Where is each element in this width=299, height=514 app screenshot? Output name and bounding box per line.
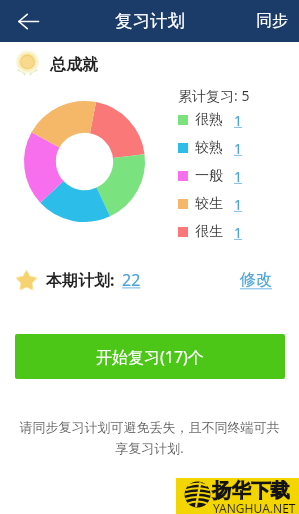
button[interactable]: 同步: [245, 1, 299, 41]
staticText: 1: [234, 139, 243, 158]
staticText: 累计复习: 5: [178, 86, 250, 105]
staticText: 1: [234, 167, 243, 186]
staticText: 很熟: [195, 111, 223, 129]
button[interactable]: 22: [122, 269, 141, 291]
staticText: 很生: [195, 223, 223, 241]
button[interactable]: 很熟: [178, 109, 243, 131]
button[interactable]: 较熟: [178, 137, 243, 159]
button[interactable]: 开始复习(17)个: [15, 334, 285, 379]
staticText: 请同步复习计划可避免丢失，且不同终端可共享复习计划.: [19, 419, 280, 457]
staticText: 较生: [195, 195, 223, 213]
staticText: 一般: [195, 167, 223, 185]
staticText: 扬华下载: [212, 478, 290, 503]
staticText: 1: [234, 111, 243, 130]
staticText: 同步: [256, 11, 288, 31]
button[interactable]: 较生: [178, 193, 243, 215]
button[interactable]: 一般: [178, 165, 243, 187]
button[interactable]: 很生: [178, 221, 243, 243]
button[interactable]: 修改: [240, 270, 272, 290]
staticText: 本期计划:: [46, 269, 115, 291]
staticText: 开始复习(17)个: [96, 346, 204, 368]
staticText: 较熟: [195, 139, 223, 157]
staticText: 1: [234, 223, 243, 242]
staticText: 复习计划: [115, 10, 185, 32]
staticText: 总成就: [50, 55, 98, 75]
staticText: YANGHUA.NET: [213, 500, 296, 514]
staticText: 1: [234, 195, 243, 214]
button[interactable]: Back: [10, 3, 46, 39]
